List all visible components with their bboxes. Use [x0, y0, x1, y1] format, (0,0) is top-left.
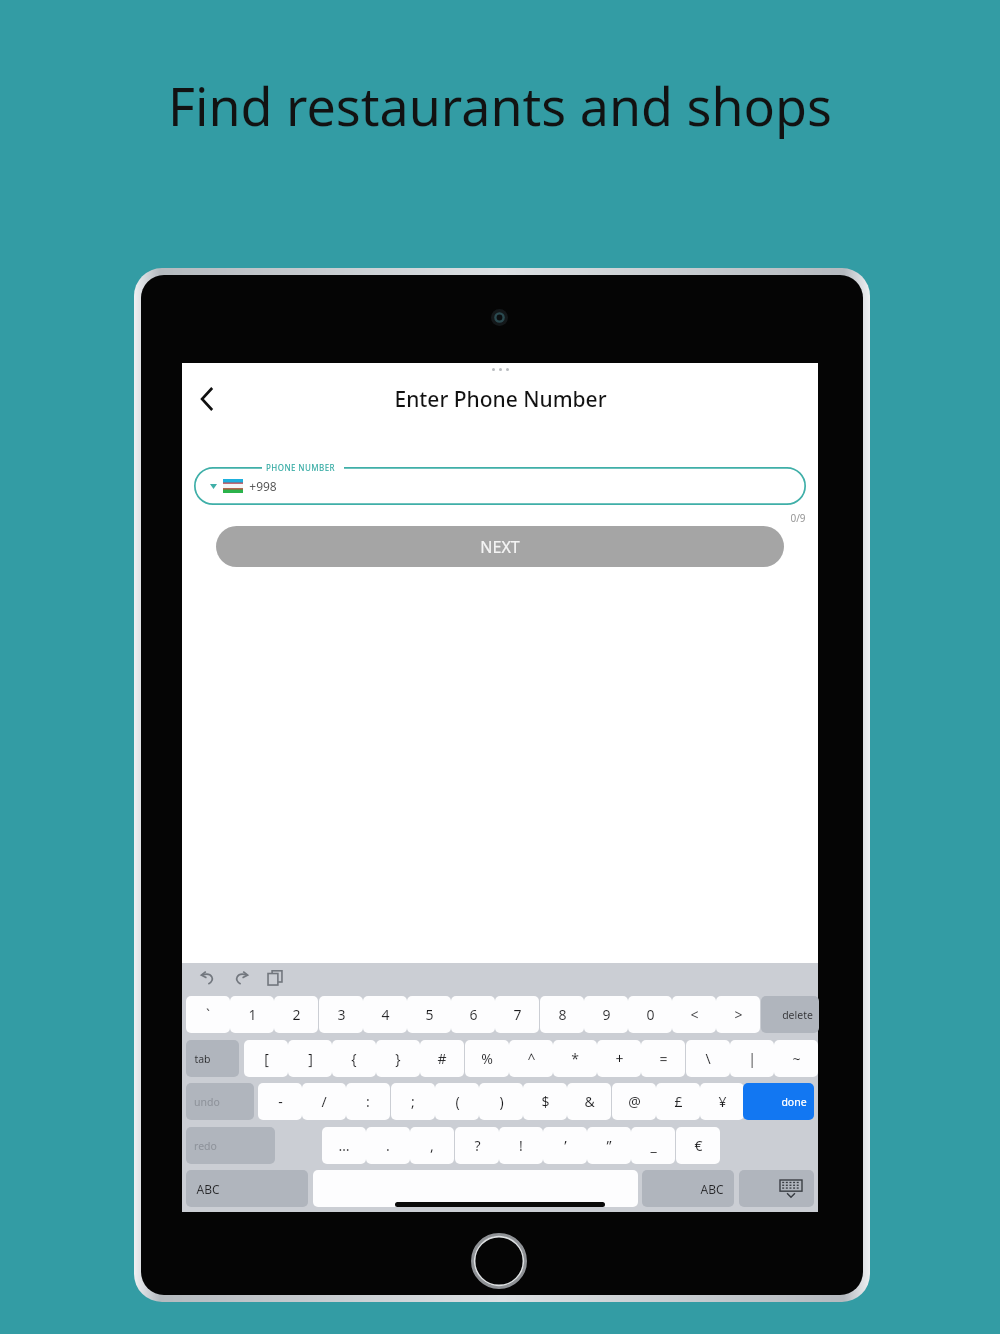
button[interactable]: ¥	[700, 1083, 744, 1120]
button[interactable]: ,	[410, 1127, 454, 1164]
button[interactable]: Redo	[229, 968, 253, 988]
button[interactable]: ABC	[642, 1170, 734, 1207]
staticText: [	[264, 1049, 269, 1068]
button[interactable]: tab	[186, 1040, 239, 1077]
button[interactable]: [	[244, 1040, 288, 1077]
button[interactable]: €	[676, 1127, 720, 1164]
staticText: 9	[602, 1005, 611, 1024]
staticText: +998	[249, 478, 277, 494]
button[interactable]: Select country code	[203, 471, 223, 501]
staticText: …	[338, 1136, 350, 1155]
button[interactable]: delete	[761, 996, 819, 1033]
button[interactable]: ;	[391, 1083, 435, 1120]
button[interactable]: \	[686, 1040, 730, 1077]
button[interactable]: NEXT	[216, 526, 784, 567]
staticText: }	[395, 1049, 401, 1068]
staticText: delete	[782, 1008, 813, 1022]
staticText: =	[659, 1049, 668, 1068]
staticText: tab	[194, 1052, 211, 1066]
staticText: #	[437, 1049, 447, 1068]
button[interactable]: .	[366, 1127, 410, 1164]
staticText: /	[321, 1092, 327, 1111]
button[interactable]: 2	[274, 996, 318, 1033]
staticText: <	[690, 1005, 699, 1024]
staticText: redo	[194, 1139, 217, 1153]
button[interactable]: 1	[230, 996, 274, 1033]
button[interactable]: <	[672, 996, 716, 1033]
staticText: 2	[292, 1005, 301, 1024]
button[interactable]: 9	[584, 996, 628, 1033]
button[interactable]: 6	[451, 996, 495, 1033]
staticText: ¥	[718, 1092, 727, 1111]
button[interactable]: {	[332, 1040, 376, 1077]
staticText: 3	[337, 1005, 346, 1024]
button[interactable]: Paste	[263, 968, 287, 988]
button[interactable]: 0	[628, 996, 672, 1033]
staticText: €	[694, 1136, 703, 1155]
button[interactable]: _	[631, 1127, 675, 1164]
button[interactable]: 8	[540, 996, 584, 1033]
button[interactable]: ^	[509, 1040, 553, 1077]
button[interactable]: %	[465, 1040, 509, 1077]
button[interactable]: redo	[186, 1127, 275, 1164]
button[interactable]: ABC	[186, 1170, 308, 1207]
button[interactable]: =	[641, 1040, 685, 1077]
button[interactable]: /	[302, 1083, 346, 1120]
button[interactable]: 5	[407, 996, 451, 1033]
button[interactable]: #	[420, 1040, 464, 1077]
button[interactable]: 4	[363, 996, 407, 1033]
staticText: 5	[425, 1005, 434, 1024]
button[interactable]: ’	[543, 1127, 587, 1164]
staticText: ABC	[700, 1181, 724, 1197]
staticText: 7	[513, 1005, 522, 1024]
button[interactable]: !	[499, 1127, 543, 1164]
button[interactable]: Hide keyboard	[739, 1170, 814, 1207]
staticText: PHONE NUMBER	[266, 462, 335, 473]
button[interactable]: …	[322, 1127, 366, 1164]
button[interactable]: :	[346, 1083, 390, 1120]
staticText: )	[499, 1092, 504, 1111]
staticText: NEXT	[480, 536, 520, 558]
staticText: 8	[558, 1005, 567, 1024]
button[interactable]: Undo	[195, 968, 219, 988]
button[interactable]	[313, 1170, 638, 1207]
button[interactable]: done	[743, 1083, 814, 1120]
staticText: Enter Phone Number	[394, 385, 607, 414]
button[interactable]: ?	[455, 1127, 499, 1164]
staticText: :	[366, 1092, 370, 1111]
staticText: .	[386, 1136, 390, 1155]
button[interactable]: Back	[184, 363, 230, 431]
button[interactable]: }	[376, 1040, 420, 1077]
button[interactable]: 3	[319, 996, 363, 1033]
button[interactable]: (	[435, 1083, 479, 1120]
button[interactable]: >	[716, 996, 760, 1033]
button[interactable]: *	[553, 1040, 597, 1077]
staticText: %	[481, 1049, 493, 1068]
staticText: @	[628, 1092, 641, 1111]
button[interactable]: @	[612, 1083, 656, 1120]
button[interactable]: +	[597, 1040, 641, 1077]
staticText: undo	[194, 1095, 220, 1109]
button[interactable]: ”	[587, 1127, 631, 1164]
button[interactable]: undo	[186, 1083, 254, 1120]
staticText: ^	[527, 1049, 536, 1068]
staticText: >	[734, 1005, 743, 1024]
staticText: \	[705, 1049, 711, 1068]
staticText: |	[748, 1049, 756, 1068]
button[interactable]: 7	[495, 996, 539, 1033]
button[interactable]: |	[730, 1040, 774, 1077]
button[interactable]: `	[186, 996, 230, 1033]
staticText: -	[278, 1092, 283, 1111]
staticText: $	[541, 1092, 550, 1111]
staticText: 4	[381, 1005, 390, 1024]
button[interactable]: $	[523, 1083, 567, 1120]
button[interactable]: £	[656, 1083, 700, 1120]
button[interactable]: )	[479, 1083, 523, 1120]
staticText: {	[351, 1049, 357, 1068]
button[interactable]: ]	[288, 1040, 332, 1077]
staticText: 6	[469, 1005, 478, 1024]
button[interactable]: -	[258, 1083, 302, 1120]
button[interactable]: ~	[774, 1040, 818, 1077]
staticText: ,	[430, 1136, 434, 1155]
button[interactable]: &	[567, 1083, 611, 1120]
